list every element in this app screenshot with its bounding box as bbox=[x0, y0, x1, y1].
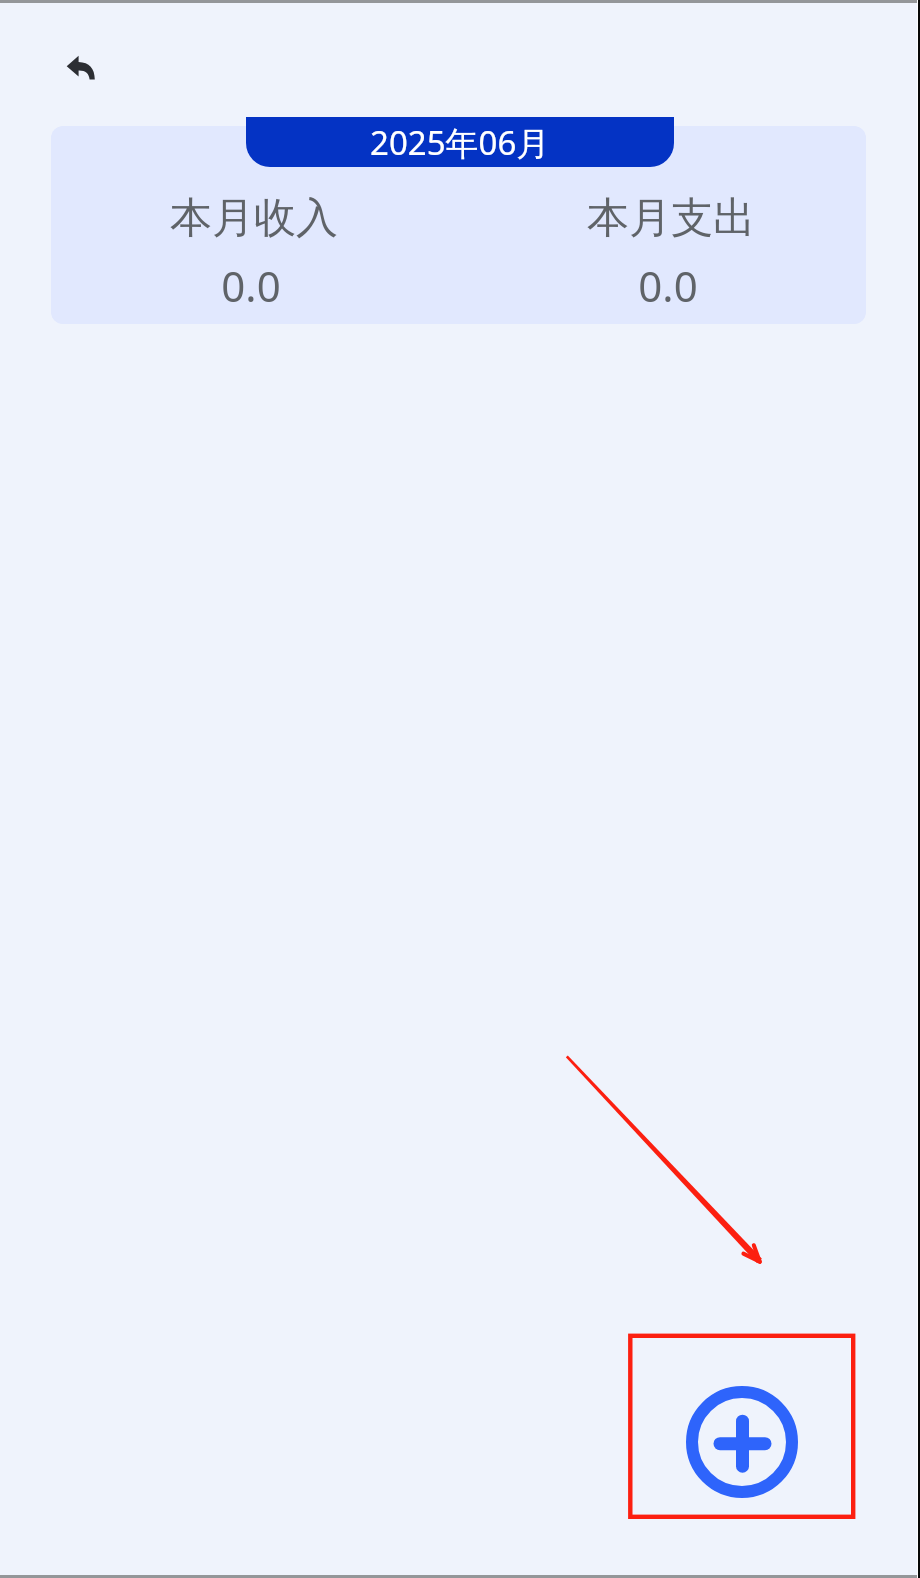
button[interactable]: 2025年06月 bbox=[246, 117, 674, 167]
staticText: 本月支出 bbox=[587, 192, 755, 245]
staticText: 2025年06月 bbox=[370, 120, 550, 165]
staticText: 0.0 bbox=[638, 257, 698, 314]
staticText: 本月收入 bbox=[170, 192, 338, 245]
button[interactable]: Add bbox=[670, 1370, 814, 1514]
button[interactable]: Back bbox=[36, 26, 120, 110]
button[interactable]: 本月收入 bbox=[54, 126, 454, 324]
button[interactable]: 本月支出 bbox=[471, 126, 866, 324]
staticText: 0.0 bbox=[221, 257, 281, 314]
